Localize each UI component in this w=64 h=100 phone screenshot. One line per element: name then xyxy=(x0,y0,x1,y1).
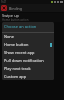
staticText: Swipe up xyxy=(2,13,20,18)
staticText: None xyxy=(4,34,14,39)
staticText: Pull down notification xyxy=(4,58,44,63)
button[interactable]: None xyxy=(2,32,54,40)
staticText: Custom app xyxy=(4,74,27,79)
button[interactable]: Show recent app xyxy=(2,48,54,56)
button[interactable]: Home button xyxy=(2,40,54,48)
button[interactable]: Pull down notification xyxy=(2,56,54,64)
staticText: Show recent app xyxy=(4,50,35,55)
staticText: Choose an action xyxy=(4,24,37,29)
button[interactable]: App icon xyxy=(0,4,64,12)
staticText: Home button xyxy=(4,42,29,47)
button[interactable]: Play next track xyxy=(2,64,54,72)
staticText: Home button action xyxy=(2,18,29,22)
staticText: Play next track xyxy=(4,66,31,71)
other: App icon xyxy=(1,5,7,11)
staticText: 9:41 xyxy=(1,0,7,4)
button[interactable]: Custom app xyxy=(2,72,54,80)
staticText: Binding xyxy=(9,6,23,11)
